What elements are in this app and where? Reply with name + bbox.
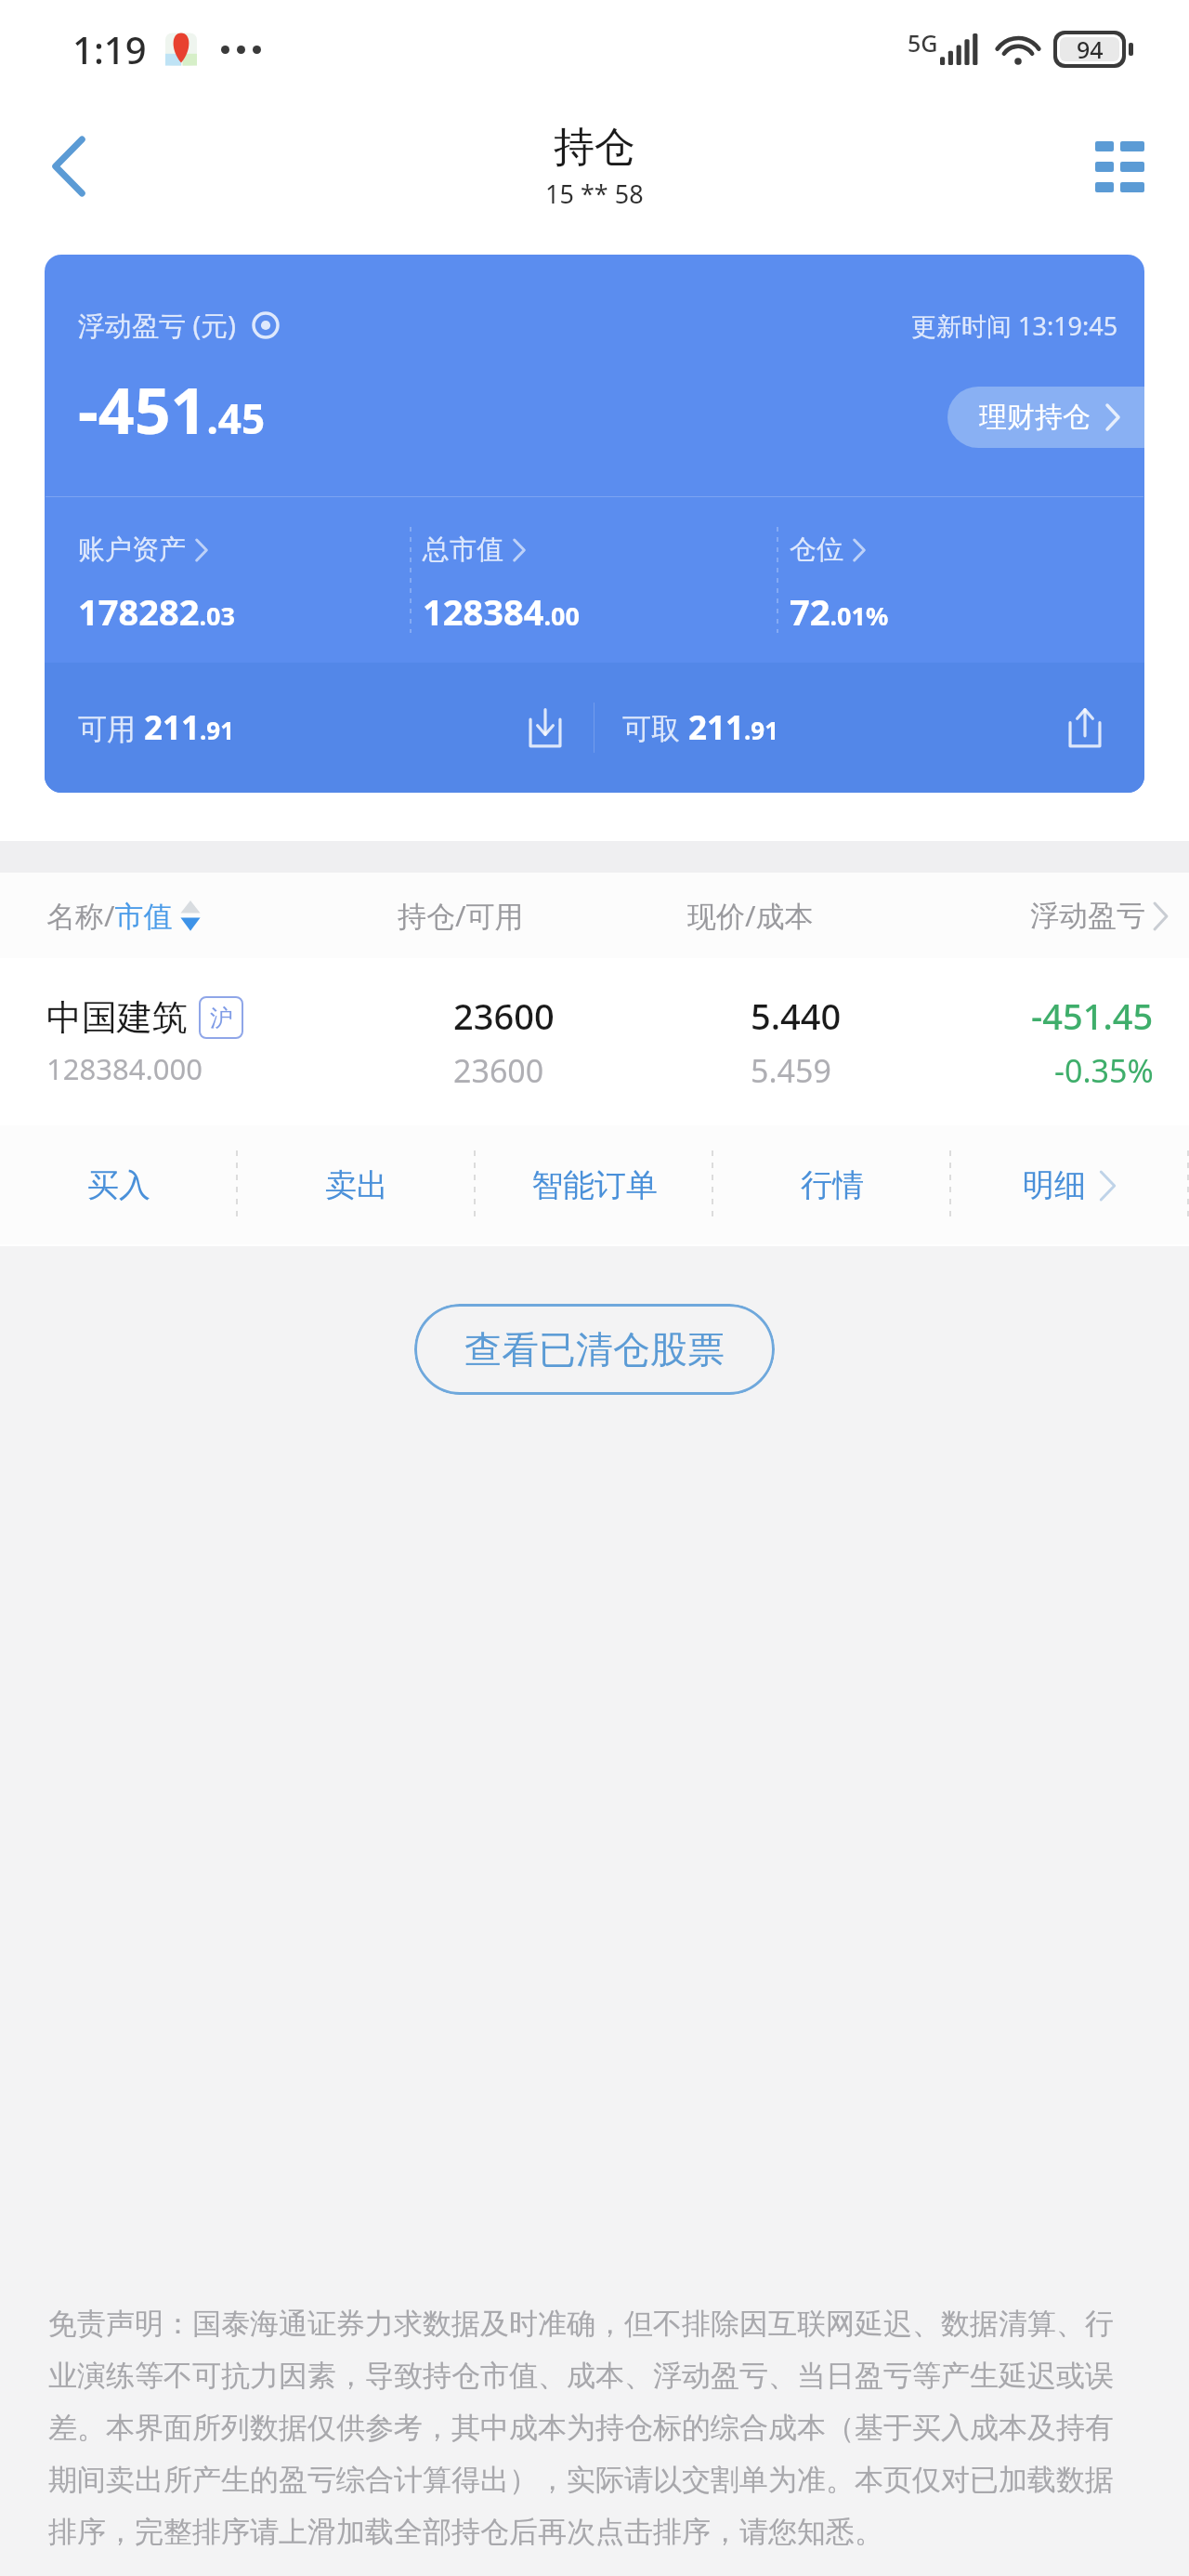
button[interactable]: 中国建筑	[0, 958, 1189, 1125]
staticText: 128384.000	[46, 1049, 203, 1088]
staticText: 账户资产	[78, 532, 186, 567]
staticText: 23600	[453, 1049, 544, 1092]
button[interactable]: 智能订单	[476, 1125, 712, 1244]
staticText: 仓位	[790, 532, 843, 567]
button[interactable]: 理财持仓	[947, 387, 1144, 448]
staticText: 免责声明：国泰海通证券力求数据及时准确，但不排除因互联网延迟、数据清算、行业演练…	[48, 2306, 1141, 2550]
button[interactable]: 浮动盈亏	[1030, 898, 1169, 934]
staticText: 行情	[801, 1165, 864, 1205]
staticText: 持仓	[554, 122, 635, 173]
staticText: 可用	[78, 708, 144, 747]
staticText: 智能订单	[531, 1165, 658, 1205]
staticText: 明细	[1023, 1165, 1086, 1205]
staticText: 1:19	[72, 24, 147, 74]
staticText: 211.91	[144, 705, 235, 750]
button[interactable]: Toggle visibility	[247, 307, 284, 344]
button[interactable]: Back	[28, 125, 110, 207]
button[interactable]: 总市值	[412, 497, 777, 663]
staticText: -451.45	[78, 366, 266, 453]
staticText: 浮动盈亏 (元)	[78, 307, 236, 344]
button[interactable]: 仓位	[778, 497, 1144, 663]
button[interactable]: 名称/市值	[46, 896, 201, 935]
button[interactable]: Menu	[1078, 125, 1161, 208]
button[interactable]: Deposit	[516, 698, 575, 757]
staticText: 可取	[622, 708, 688, 747]
staticText: 128384.00	[423, 587, 580, 636]
staticText: 15 ** 58	[545, 177, 644, 211]
button[interactable]: 账户资产	[45, 497, 411, 663]
button[interactable]: 行情	[713, 1125, 950, 1244]
staticText: 5G	[908, 27, 938, 59]
staticText: 23600	[453, 992, 555, 1040]
staticText: 178282.03	[78, 587, 235, 636]
staticText: 中国建筑	[46, 995, 188, 1040]
staticText: 沪	[210, 1004, 233, 1032]
button[interactable]: 明细	[951, 1125, 1188, 1244]
staticText: 72.01%	[790, 587, 889, 636]
staticText: 浮动盈亏	[1030, 898, 1145, 934]
staticText: 名称/市值	[46, 896, 173, 935]
staticText: 5.440	[751, 992, 842, 1040]
staticText: 211.91	[688, 705, 779, 750]
staticText: 94	[1077, 33, 1104, 65]
staticText: 理财持仓	[979, 400, 1091, 435]
button[interactable]: 买入	[0, 1125, 237, 1244]
staticText: 持仓/可用	[398, 896, 524, 935]
staticText: -0.35%	[1054, 1049, 1154, 1092]
staticText: 卖出	[325, 1165, 388, 1205]
staticText: 查看已清仓股票	[464, 1326, 725, 1373]
staticText: 更新时间 13:19:45	[911, 309, 1118, 343]
staticText: 现价/成本	[687, 896, 814, 935]
button[interactable]: Withdraw	[1055, 698, 1115, 757]
button[interactable]: 可取	[594, 663, 1144, 793]
staticText: -451.45	[1031, 992, 1154, 1040]
staticText: 5.459	[751, 1049, 831, 1092]
staticText: 总市值	[423, 532, 503, 567]
staticText: 买入	[87, 1165, 150, 1205]
button[interactable]: 可用	[45, 663, 594, 793]
button[interactable]: 查看已清仓股票	[414, 1304, 775, 1395]
button[interactable]: 卖出	[238, 1125, 475, 1244]
